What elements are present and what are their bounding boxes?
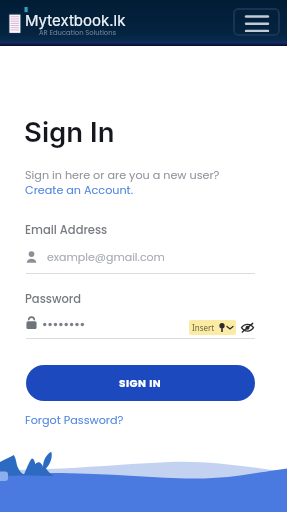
button[interactable]: Create an Account. [25,182,134,198]
button[interactable]: Show password [241,323,254,332]
button[interactable]: Forgot Password? [25,412,124,428]
staticText: example@gmail.com [47,249,165,264]
staticText: Insert [192,322,215,333]
staticText: Create an Account. [25,182,134,198]
button[interactable]: SIGN IN [26,365,255,401]
staticText: Email Address [25,222,108,238]
staticText: Sign In [24,115,115,148]
staticText: Forgot Password? [25,412,124,428]
staticText: Sign in here or are you a new user? [25,167,220,183]
button[interactable]: Menu [233,8,280,36]
button[interactable]: Insert [192,322,233,333]
staticText: SIGN IN [119,376,162,391]
staticText: AR Education Solutions [39,28,117,38]
staticText: Password [25,291,81,307]
staticText: Mytextbook.lk [25,11,126,29]
